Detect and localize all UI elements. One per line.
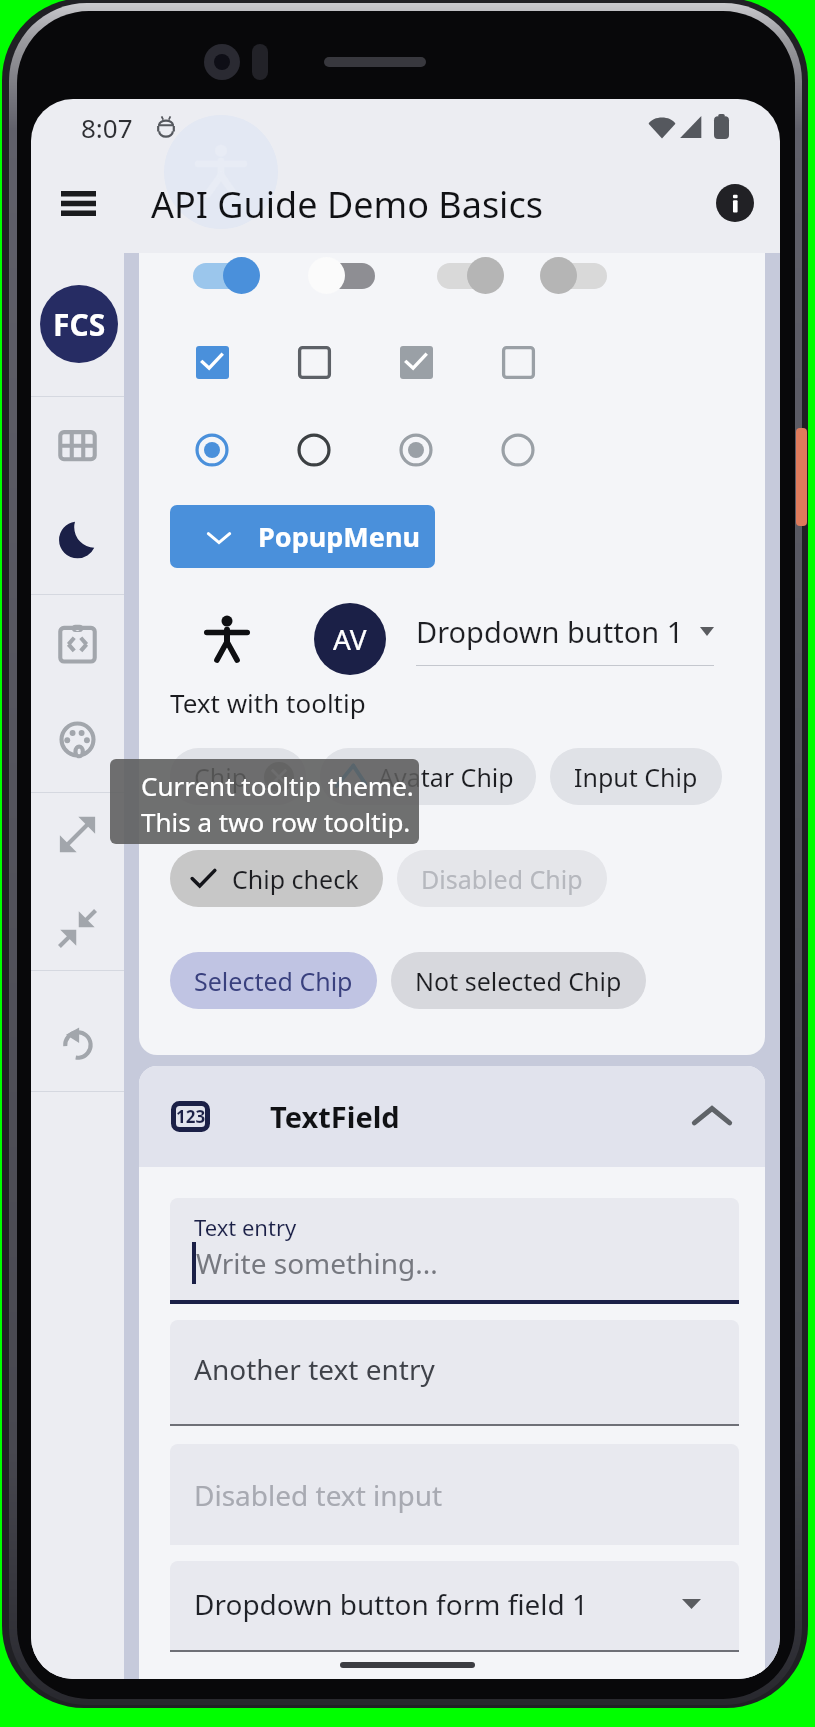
button[interactable]: Dropdown button 1	[416, 605, 714, 666]
button[interactable]: PopupMenu	[170, 505, 435, 568]
button[interactable]: Checkbox	[190, 340, 234, 384]
button[interactable]: Info	[716, 184, 754, 222]
button[interactable]: Grid layout	[31, 400, 124, 492]
button[interactable]: Dark mode	[31, 493, 124, 585]
button[interactable]: Accessibility	[204, 616, 250, 662]
button[interactable]: 123	[139, 1066, 765, 1167]
staticText: FCS	[53, 304, 106, 345]
button[interactable]: Theme colors	[31, 693, 124, 785]
button[interactable]: Selected Chip	[170, 952, 377, 1009]
button[interactable]: Another text entry	[170, 1320, 739, 1426]
staticText: 123	[176, 1105, 206, 1128]
staticText: This a two row tooltip.	[141, 804, 411, 839]
button[interactable]: Disabled Chip	[397, 850, 607, 907]
staticText: PopupMenu	[258, 518, 420, 555]
button[interactable]: Toggle switch	[540, 257, 619, 294]
staticText: 8:07	[81, 110, 133, 145]
button[interactable]: Chip check	[170, 850, 383, 907]
button[interactable]: Radio button	[494, 426, 542, 474]
button[interactable]: Text with tooltip	[170, 685, 366, 720]
button[interactable]: Chip	[170, 748, 306, 805]
button[interactable]: Open navigation menu	[45, 177, 111, 229]
staticText: Chip check	[232, 862, 359, 896]
staticText: Avatar Chip	[378, 760, 514, 794]
staticText: Input Chip	[574, 760, 698, 794]
button[interactable]: FCS	[40, 285, 118, 363]
staticText: Selected Chip	[194, 964, 353, 998]
button[interactable]: AV	[314, 603, 386, 675]
staticText: Text entry	[194, 1212, 297, 1242]
button[interactable]: Reset	[31, 994, 124, 1086]
button[interactable]: Checkbox	[496, 340, 540, 384]
button[interactable]: Expand all	[31, 788, 124, 880]
staticText: API Guide Demo Basics	[151, 180, 543, 229]
staticText: AV	[333, 620, 367, 658]
staticText: Chip	[194, 760, 248, 794]
staticText: Write something...	[196, 1244, 438, 1282]
button[interactable]: Not selected Chip	[391, 952, 646, 1009]
button[interactable]: Radio button	[188, 426, 236, 474]
button[interactable]: Avatar Chip	[320, 748, 536, 805]
button[interactable]: Checkbox	[394, 340, 438, 384]
button[interactable]: Collapse all	[31, 882, 124, 974]
button[interactable]: Toggle switch	[308, 257, 387, 294]
staticText: Current tooltip theme.	[141, 768, 414, 803]
staticText: Disabled text input	[194, 1476, 443, 1514]
button[interactable]: Source code	[31, 597, 124, 689]
staticText: Dropdown button form field 1	[194, 1585, 589, 1623]
button[interactable]: Text entry	[170, 1198, 739, 1304]
button[interactable]: Dropdown button form field 1	[170, 1561, 739, 1652]
button[interactable]: Toggle switch	[181, 257, 260, 294]
button[interactable]: Checkbox	[292, 340, 336, 384]
staticText: TextField	[270, 1097, 400, 1136]
staticText: Disabled Chip	[421, 862, 583, 896]
staticText: Not selected Chip	[415, 964, 622, 998]
button[interactable]: Radio button	[290, 426, 338, 474]
staticText: Another text entry	[194, 1350, 435, 1388]
button[interactable]: Radio button	[392, 426, 440, 474]
button[interactable]: Input Chip	[550, 748, 722, 805]
staticText: Dropdown button 1	[416, 612, 684, 651]
button[interactable]: Toggle switch	[425, 257, 504, 294]
